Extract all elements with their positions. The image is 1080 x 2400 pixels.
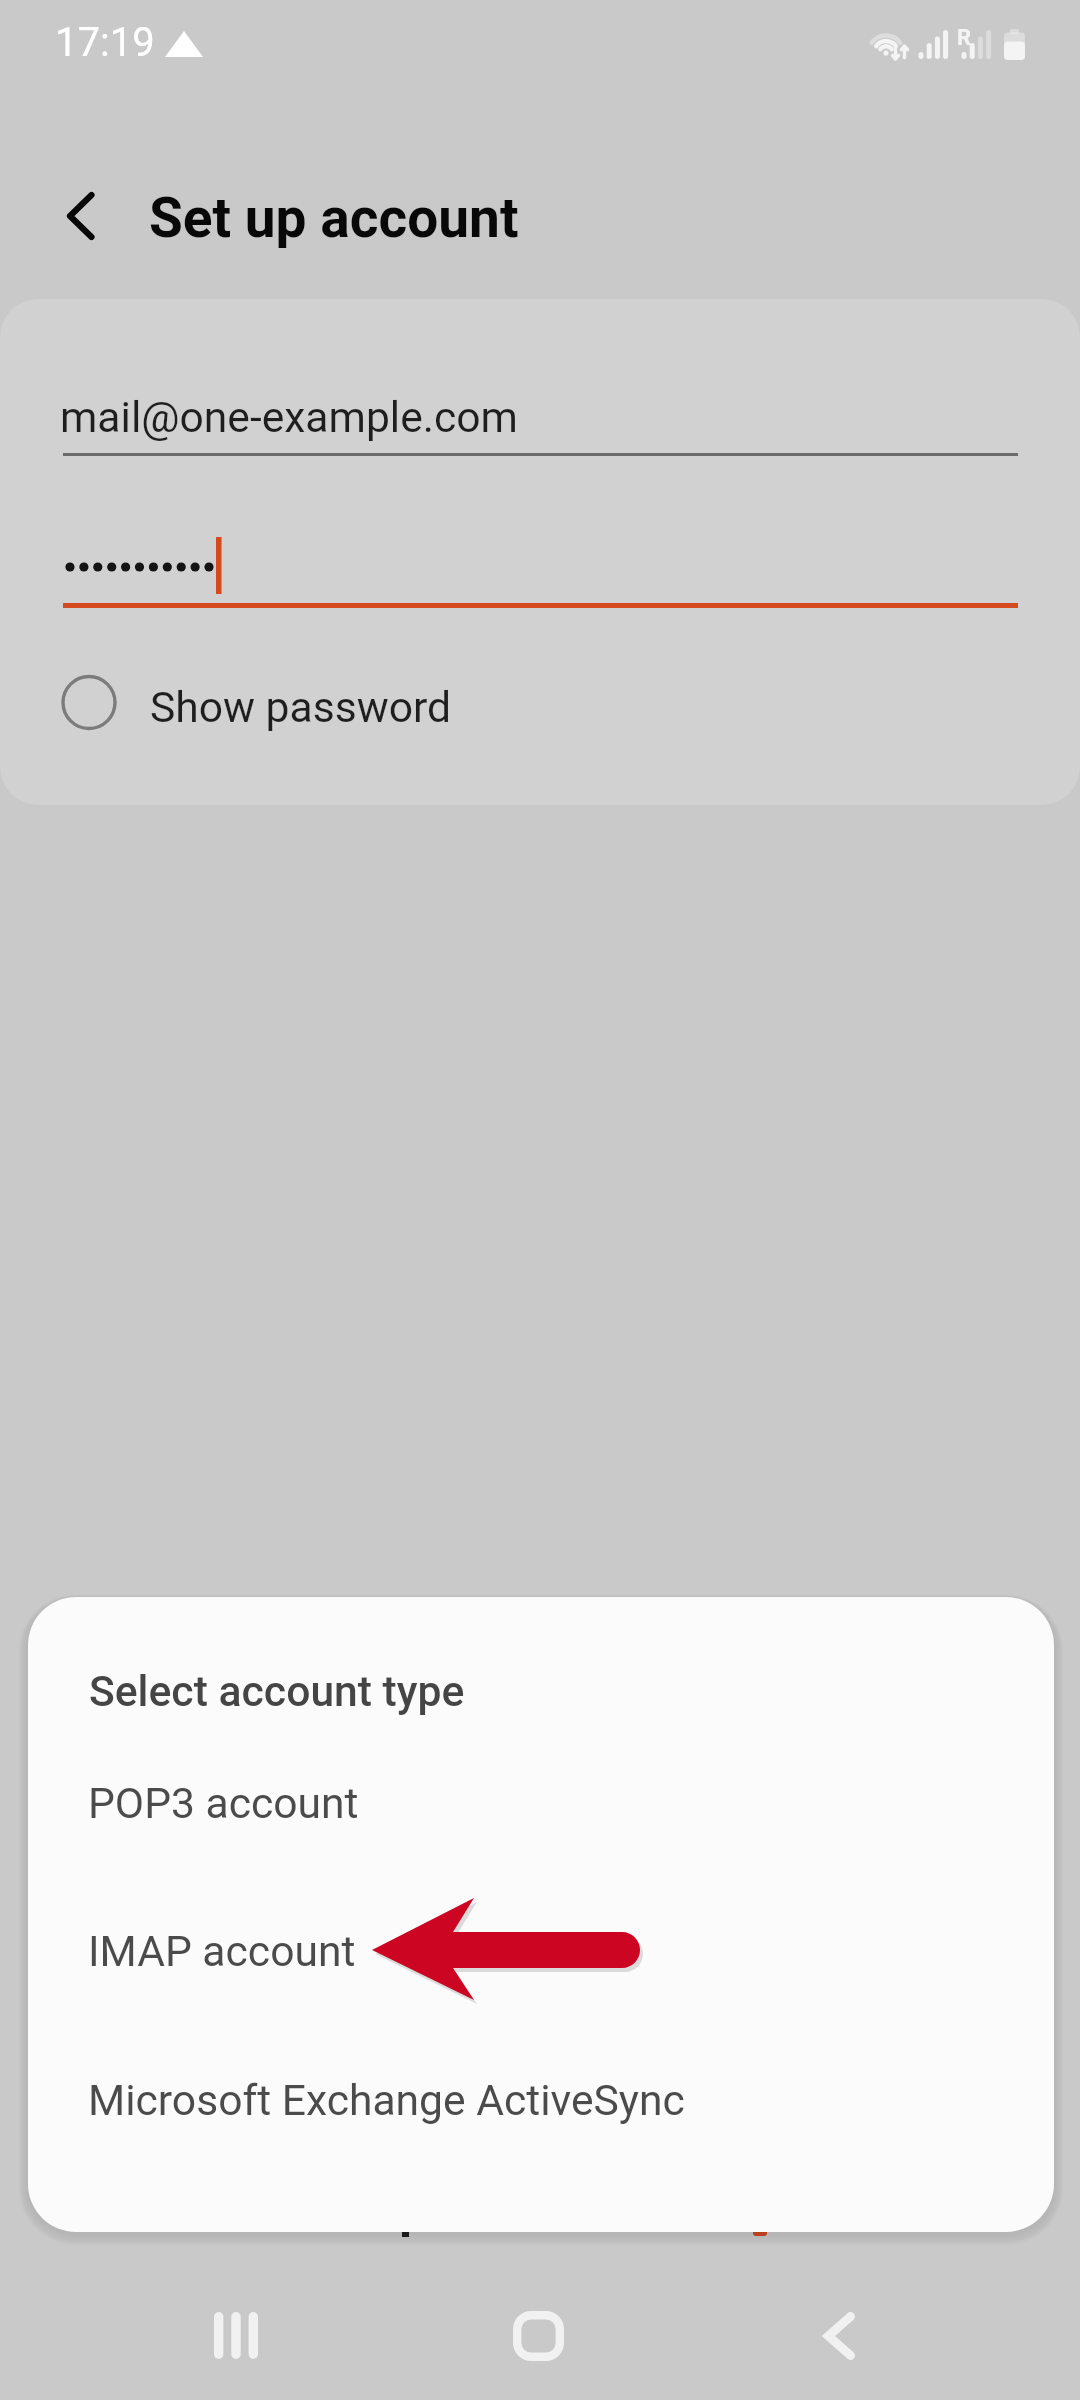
staticText: mail@one-example.com bbox=[60, 392, 518, 442]
button[interactable]: Recent apps bbox=[178, 2262, 293, 2400]
staticText: R bbox=[957, 25, 972, 51]
button[interactable]: Microsoft Exchange ActiveSync bbox=[28, 2034, 1054, 2158]
staticText: Microsoft Exchange ActiveSync bbox=[88, 2075, 685, 2125]
button[interactable]: Back bbox=[781, 2262, 896, 2400]
staticText: POP3 account bbox=[88, 1778, 359, 1828]
staticText: Select account type bbox=[89, 1666, 465, 1716]
button[interactable]: POP3 account bbox=[28, 1737, 1054, 1861]
button[interactable]: Home bbox=[481, 2262, 596, 2400]
button[interactable]: Show password bbox=[0, 647, 1080, 767]
staticText: Show password bbox=[150, 682, 452, 732]
staticText: IMAP account bbox=[88, 1926, 356, 1976]
staticText: Set up account bbox=[149, 186, 519, 250]
button[interactable]: IMAP account bbox=[28, 1885, 1054, 2009]
staticText: 17:19 bbox=[55, 19, 155, 66]
button[interactable]: Navigate up bbox=[27, 160, 137, 272]
